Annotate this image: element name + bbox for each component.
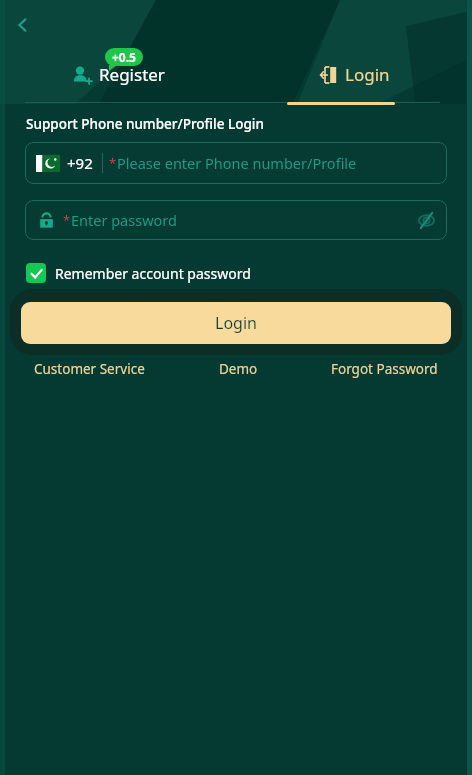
staticText: Login [215, 312, 257, 334]
staticText: Remember account password [55, 264, 251, 283]
button[interactable]: Demo [207, 358, 270, 380]
button[interactable]: Show password [409, 203, 443, 237]
button[interactable]: Back [6, 8, 40, 42]
button[interactable]: * [25, 200, 447, 240]
staticText: Demo [219, 360, 258, 378]
staticText: Login [345, 63, 390, 86]
staticText: Customer Service [34, 360, 145, 378]
staticText: +0.5 [112, 49, 136, 65]
staticText: * [63, 211, 71, 229]
button[interactable]: +92 [25, 142, 447, 184]
staticText: Register [99, 63, 165, 86]
staticText: Enter password [71, 210, 177, 230]
staticText: Forgot Password [331, 360, 438, 378]
button[interactable]: Login [21, 302, 451, 344]
button[interactable]: Login [236, 46, 472, 102]
button[interactable]: Customer Service [22, 358, 157, 380]
staticText: * [109, 154, 117, 172]
button[interactable]: Remember account password [26, 263, 251, 283]
button[interactable]: Register [0, 46, 236, 102]
staticText: +92 [67, 153, 93, 173]
staticText: Support Phone number/Profile Login [26, 115, 264, 133]
staticText: Please enter Phone number/Profile [117, 153, 357, 173]
button[interactable]: Forgot Password [319, 358, 450, 380]
